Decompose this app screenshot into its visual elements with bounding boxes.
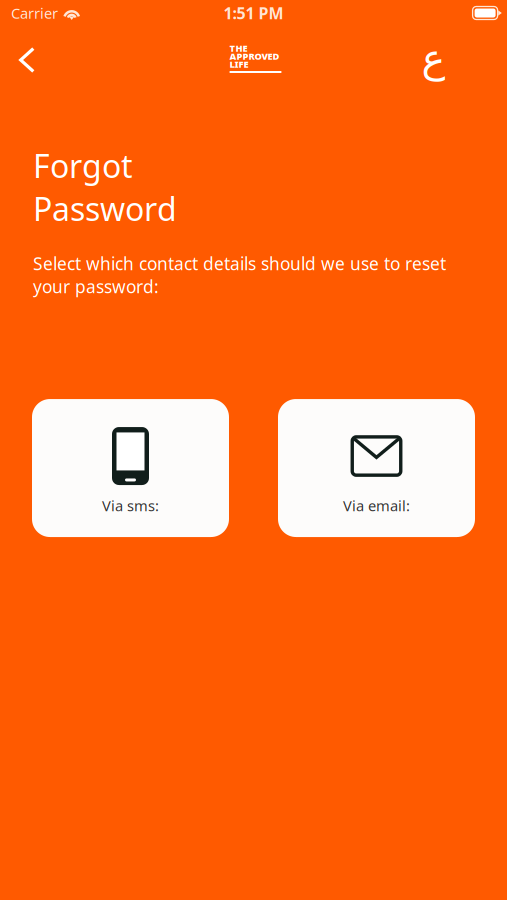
staticText: Carrier — [11, 3, 58, 23]
button[interactable]: Via email: — [278, 399, 475, 537]
staticText: Password — [33, 187, 177, 230]
staticText: ع — [421, 35, 445, 81]
staticText: Via email: — [343, 496, 410, 515]
staticText: 1:51 PM — [223, 2, 283, 24]
staticText: Forgot — [33, 144, 133, 187]
staticText: THE — [229, 42, 247, 54]
staticText: LIFE — [229, 58, 248, 70]
button[interactable]: Back — [5, 38, 49, 82]
staticText: Via sms: — [102, 496, 159, 515]
button[interactable]: Via sms: — [32, 399, 229, 537]
staticText: APPROVED — [229, 50, 279, 62]
staticText: Select which contact details should we u… — [33, 252, 446, 298]
button[interactable]: Switch language — [411, 38, 455, 82]
